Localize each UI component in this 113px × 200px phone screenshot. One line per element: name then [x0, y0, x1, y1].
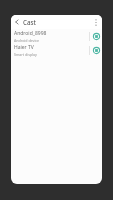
button[interactable]: Haier TV [11, 43, 102, 57]
staticText: Android_8998 [14, 30, 47, 37]
button[interactable]: Android_8998 [11, 29, 102, 43]
button[interactable]: Cast to Haier TV [90, 43, 102, 57]
staticText: Cast [23, 18, 36, 26]
staticText: Smart display [14, 52, 37, 57]
button[interactable]: Navigate up [11, 15, 23, 29]
staticText: Android device [14, 38, 40, 43]
button[interactable]: More options [90, 15, 102, 29]
button[interactable]: Cast to Android_8998 [90, 29, 102, 43]
staticText: Haier TV [14, 44, 34, 51]
